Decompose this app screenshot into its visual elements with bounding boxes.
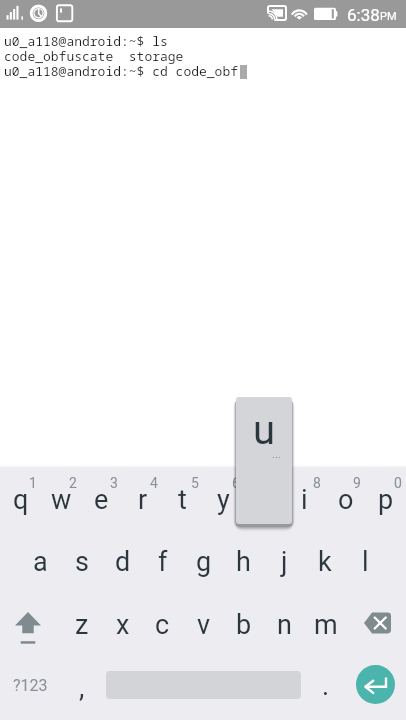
staticText: i [301, 484, 308, 516]
button[interactable]: v [183, 598, 224, 659]
button[interactable]: e [81, 468, 122, 536]
button[interactable]: Enter [345, 659, 406, 720]
button[interactable]: Shift [0, 598, 61, 659]
staticText: 2 [69, 475, 77, 491]
staticText: l [362, 546, 369, 578]
staticText: t [178, 484, 187, 516]
staticText: 5 [191, 475, 199, 491]
staticText: y [217, 484, 230, 516]
staticText: u0_a118@android:~$ ls [4, 32, 168, 50]
staticText: z [75, 609, 89, 641]
button[interactable]: q [0, 468, 41, 536]
staticText: 6:38 [347, 5, 380, 25]
staticText: 9 [353, 475, 361, 491]
staticText: n [277, 609, 292, 641]
staticText: v [197, 609, 211, 641]
button[interactable]: . [305, 659, 346, 720]
staticText: p [378, 484, 394, 516]
staticText: r [138, 484, 148, 516]
staticText: ?123 [13, 676, 48, 695]
staticText: c [155, 609, 170, 641]
button[interactable]: ?123 [0, 659, 61, 720]
button[interactable]: s [61, 536, 102, 598]
staticText: e [94, 484, 109, 516]
staticText: q [13, 484, 29, 516]
staticText: h [236, 546, 251, 578]
button[interactable]: i [284, 468, 325, 536]
staticText: k [318, 546, 332, 578]
staticText: o [338, 484, 354, 516]
staticText: s [75, 546, 89, 578]
button[interactable]: b [223, 598, 264, 659]
button[interactable]: d [102, 536, 143, 598]
staticText: 6 [232, 475, 240, 491]
staticText: u0_a118@android:~$ cd code_obf [4, 62, 239, 80]
button[interactable]: h [223, 536, 264, 598]
button[interactable]: a [20, 536, 61, 598]
button[interactable]: Backspace [345, 598, 406, 659]
button[interactable]: t [162, 468, 203, 536]
staticText: m [314, 609, 338, 641]
button[interactable]: r [122, 468, 163, 536]
button[interactable]: k [304, 536, 345, 598]
button[interactable]: f [142, 536, 183, 598]
staticText: a [33, 546, 48, 578]
button[interactable]: Space [102, 659, 305, 720]
button[interactable]: z [61, 598, 102, 659]
staticText: w [51, 484, 72, 516]
staticText: x [116, 609, 130, 641]
button[interactable]: w [41, 468, 82, 536]
staticText: 4 [150, 475, 158, 491]
staticText: u [253, 407, 276, 454]
button[interactable]: , [61, 659, 102, 720]
staticText: 0 [394, 475, 402, 491]
button[interactable]: y [203, 468, 244, 536]
staticText: d [115, 546, 131, 578]
staticText: 1 [29, 475, 37, 491]
staticText: 8 [313, 475, 321, 491]
staticText: 3 [110, 475, 118, 491]
staticText: . [322, 670, 330, 702]
button[interactable]: p [365, 468, 406, 536]
staticText: j [281, 546, 288, 578]
staticText: b [236, 609, 252, 641]
button[interactable]: g [183, 536, 224, 598]
staticText: ... [272, 448, 281, 461]
staticText: code_obfuscate storage [4, 47, 184, 65]
button[interactable]: x [102, 598, 143, 659]
button[interactable]: n [264, 598, 305, 659]
staticText: , [79, 672, 85, 704]
button[interactable]: c [142, 598, 183, 659]
button[interactable]: l [345, 536, 386, 598]
staticText: PM [380, 10, 397, 23]
staticText: f [158, 546, 168, 578]
staticText: g [196, 546, 212, 578]
button[interactable]: m [305, 598, 346, 659]
button[interactable]: j [264, 536, 305, 598]
button[interactable]: u [244, 468, 285, 536]
button[interactable]: o [325, 468, 366, 536]
